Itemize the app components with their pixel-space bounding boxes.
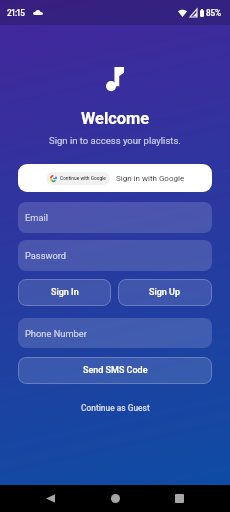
staticText: 85% <box>206 8 222 18</box>
staticText: Sign In <box>51 287 79 298</box>
button[interactable]: Back <box>33 485 68 512</box>
staticText: Sign Up <box>149 287 181 298</box>
staticText: Continue as Guest <box>81 403 150 413</box>
staticText: 21:15 <box>7 8 25 18</box>
button[interactable]: Continue with Google <box>18 164 212 192</box>
staticText: Continue with Google <box>60 176 106 182</box>
button[interactable]: Sign In <box>18 279 111 306</box>
staticText: Sign in to access your playlists. <box>49 135 181 146</box>
button[interactable]: Sign Up <box>118 279 212 306</box>
button[interactable]: Recent apps <box>162 485 197 512</box>
button[interactable]: Home <box>98 485 133 512</box>
button[interactable]: Send SMS Code <box>18 357 212 384</box>
staticText: Email <box>25 212 49 223</box>
staticText: Password <box>25 250 67 261</box>
staticText: Sign in with Google <box>116 174 185 183</box>
button[interactable]: Phone Number <box>18 318 212 348</box>
staticText: Phone Number <box>25 328 87 339</box>
staticText: Welcome <box>81 109 150 128</box>
staticText: Send SMS Code <box>83 365 148 376</box>
button[interactable]: Password <box>18 240 212 271</box>
button[interactable]: Email <box>18 202 212 233</box>
button[interactable]: Continue as Guest <box>71 399 160 417</box>
